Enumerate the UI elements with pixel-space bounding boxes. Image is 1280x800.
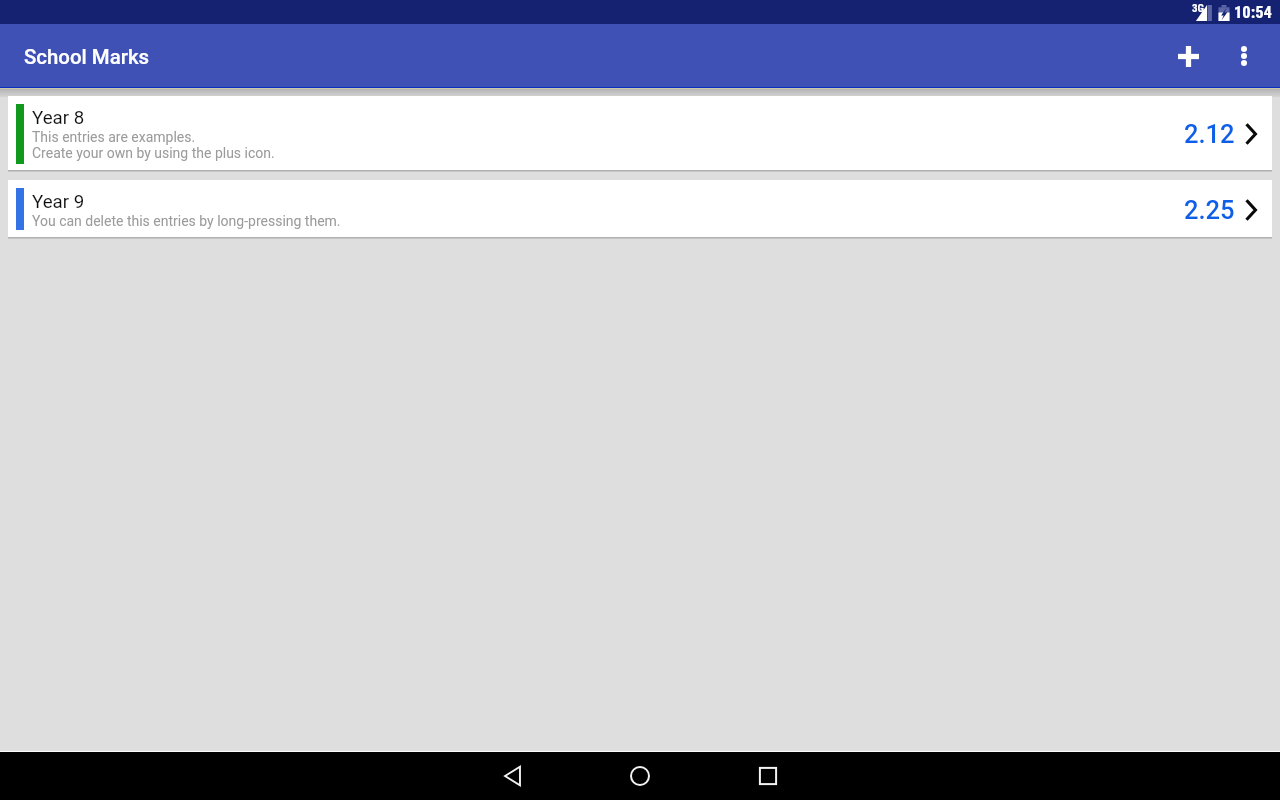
staticText: Year 8 — [32, 107, 85, 129]
button[interactable]: Year 9 — [8, 180, 1272, 237]
button[interactable]: Add new entry — [1160, 24, 1216, 88]
staticText: 2.12 — [1184, 119, 1235, 149]
staticText: This entries are examples. — [32, 129, 196, 145]
button[interactable]: Back — [448, 752, 576, 800]
staticText: School Marks — [24, 45, 150, 69]
button[interactable]: More options — [1216, 24, 1272, 88]
staticText: Create your own by using the plus icon. — [32, 145, 275, 161]
staticText: You can delete this entries by long-pres… — [32, 213, 341, 229]
staticText: 3G — [1192, 2, 1205, 15]
staticText: 2.25 — [1184, 195, 1235, 225]
button[interactable]: Recent apps — [704, 752, 832, 800]
button[interactable]: Year 8 — [8, 96, 1272, 170]
staticText: 10:54 — [1234, 3, 1272, 22]
button[interactable]: Home — [576, 752, 704, 800]
staticText: Year 9 — [32, 191, 85, 213]
